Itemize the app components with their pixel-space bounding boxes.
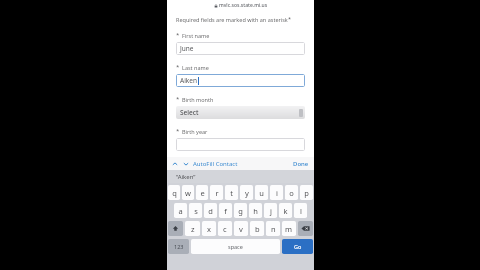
staticText: i	[276, 188, 278, 198]
button[interactable]: “Aiken”	[176, 173, 196, 181]
button[interactable]: i	[270, 185, 283, 200]
button[interactable]: Go	[282, 239, 313, 254]
staticText: Birth year	[182, 128, 208, 135]
staticText: a	[178, 206, 183, 216]
button[interactable]: Shift	[168, 221, 183, 236]
staticText: Select	[180, 108, 199, 117]
staticText: *	[176, 63, 180, 71]
button[interactable]: c	[218, 221, 232, 236]
button[interactable]: k	[279, 203, 292, 218]
staticText: *	[176, 95, 180, 103]
button[interactable]: Birth month selector	[176, 106, 305, 119]
staticText: b	[255, 224, 260, 234]
staticText: *	[176, 127, 180, 135]
button[interactable]: y	[240, 185, 253, 200]
staticText: s	[194, 206, 198, 216]
staticText: Done	[293, 160, 309, 168]
button[interactable]: r	[210, 185, 223, 200]
staticText: mvlc.sos.state.mi.us	[219, 2, 268, 9]
button[interactable]: AutoFill Contact	[193, 160, 238, 168]
staticText: Go	[294, 243, 302, 250]
button[interactable]: n	[266, 221, 280, 236]
button[interactable]: h	[249, 203, 262, 218]
button[interactable]: z	[185, 221, 200, 236]
staticText: y	[245, 188, 249, 198]
button[interactable]: x	[202, 221, 216, 236]
staticText: v	[239, 224, 243, 234]
button[interactable]: p	[300, 185, 313, 200]
staticText: d	[208, 206, 213, 216]
staticText: l	[300, 206, 302, 216]
staticText: u	[259, 188, 264, 198]
staticText: “Aiken”	[176, 173, 196, 181]
button[interactable]: b	[250, 221, 264, 236]
staticText: g	[238, 206, 243, 216]
button[interactable]: j	[264, 203, 277, 218]
button[interactable]: l	[294, 203, 307, 218]
button[interactable]: Previous field	[170, 159, 179, 168]
staticText: p	[304, 188, 309, 198]
staticText: Aiken	[180, 76, 197, 85]
staticText: o	[289, 188, 294, 198]
button[interactable]: t	[225, 185, 238, 200]
staticText: h	[253, 206, 258, 216]
button[interactable]: v	[234, 221, 248, 236]
staticText: j	[270, 206, 272, 216]
staticText: e	[200, 188, 205, 198]
button[interactable]: Done	[291, 160, 311, 168]
button[interactable]: Backspace	[298, 221, 313, 236]
button[interactable]: m	[282, 221, 296, 236]
button[interactable]: f	[219, 203, 232, 218]
staticText: space	[228, 243, 243, 250]
staticText: June	[180, 44, 194, 53]
staticText: k	[283, 206, 288, 216]
staticText: Birth month	[182, 96, 214, 103]
button[interactable]: d	[204, 203, 217, 218]
staticText: Last name	[182, 64, 209, 71]
button[interactable]: o	[285, 185, 298, 200]
staticText: x	[207, 224, 211, 234]
button[interactable]: Aiken	[176, 74, 305, 87]
button[interactable]: a	[174, 203, 187, 218]
staticText: z	[191, 224, 195, 234]
button[interactable]: e	[196, 185, 208, 200]
staticText: t	[230, 188, 233, 198]
button[interactable]: w	[182, 185, 194, 200]
button[interactable]: Address bar	[167, 0, 314, 11]
button[interactable]: June	[176, 42, 305, 55]
staticText: *	[176, 31, 180, 39]
button[interactable]: g	[234, 203, 247, 218]
button[interactable]	[176, 138, 305, 151]
staticText: AutoFill Contact	[193, 160, 238, 168]
staticText: n	[271, 224, 276, 234]
button[interactable]: space	[191, 239, 280, 254]
staticText: m	[285, 224, 293, 234]
staticText: First name	[182, 32, 210, 39]
staticText: *	[288, 15, 292, 22]
staticText: Required fields are marked with an aster…	[176, 16, 288, 23]
staticText: f	[224, 206, 227, 216]
staticText: q	[172, 188, 177, 198]
button[interactable]: q	[168, 185, 180, 200]
staticText: w	[185, 188, 191, 198]
button[interactable]: s	[189, 203, 202, 218]
staticText: r	[215, 188, 219, 198]
button[interactable]: u	[255, 185, 268, 200]
staticText: c	[223, 224, 227, 234]
staticText: 123	[174, 243, 184, 250]
button[interactable]: Next field	[181, 159, 190, 168]
button[interactable]: 123	[168, 239, 189, 254]
